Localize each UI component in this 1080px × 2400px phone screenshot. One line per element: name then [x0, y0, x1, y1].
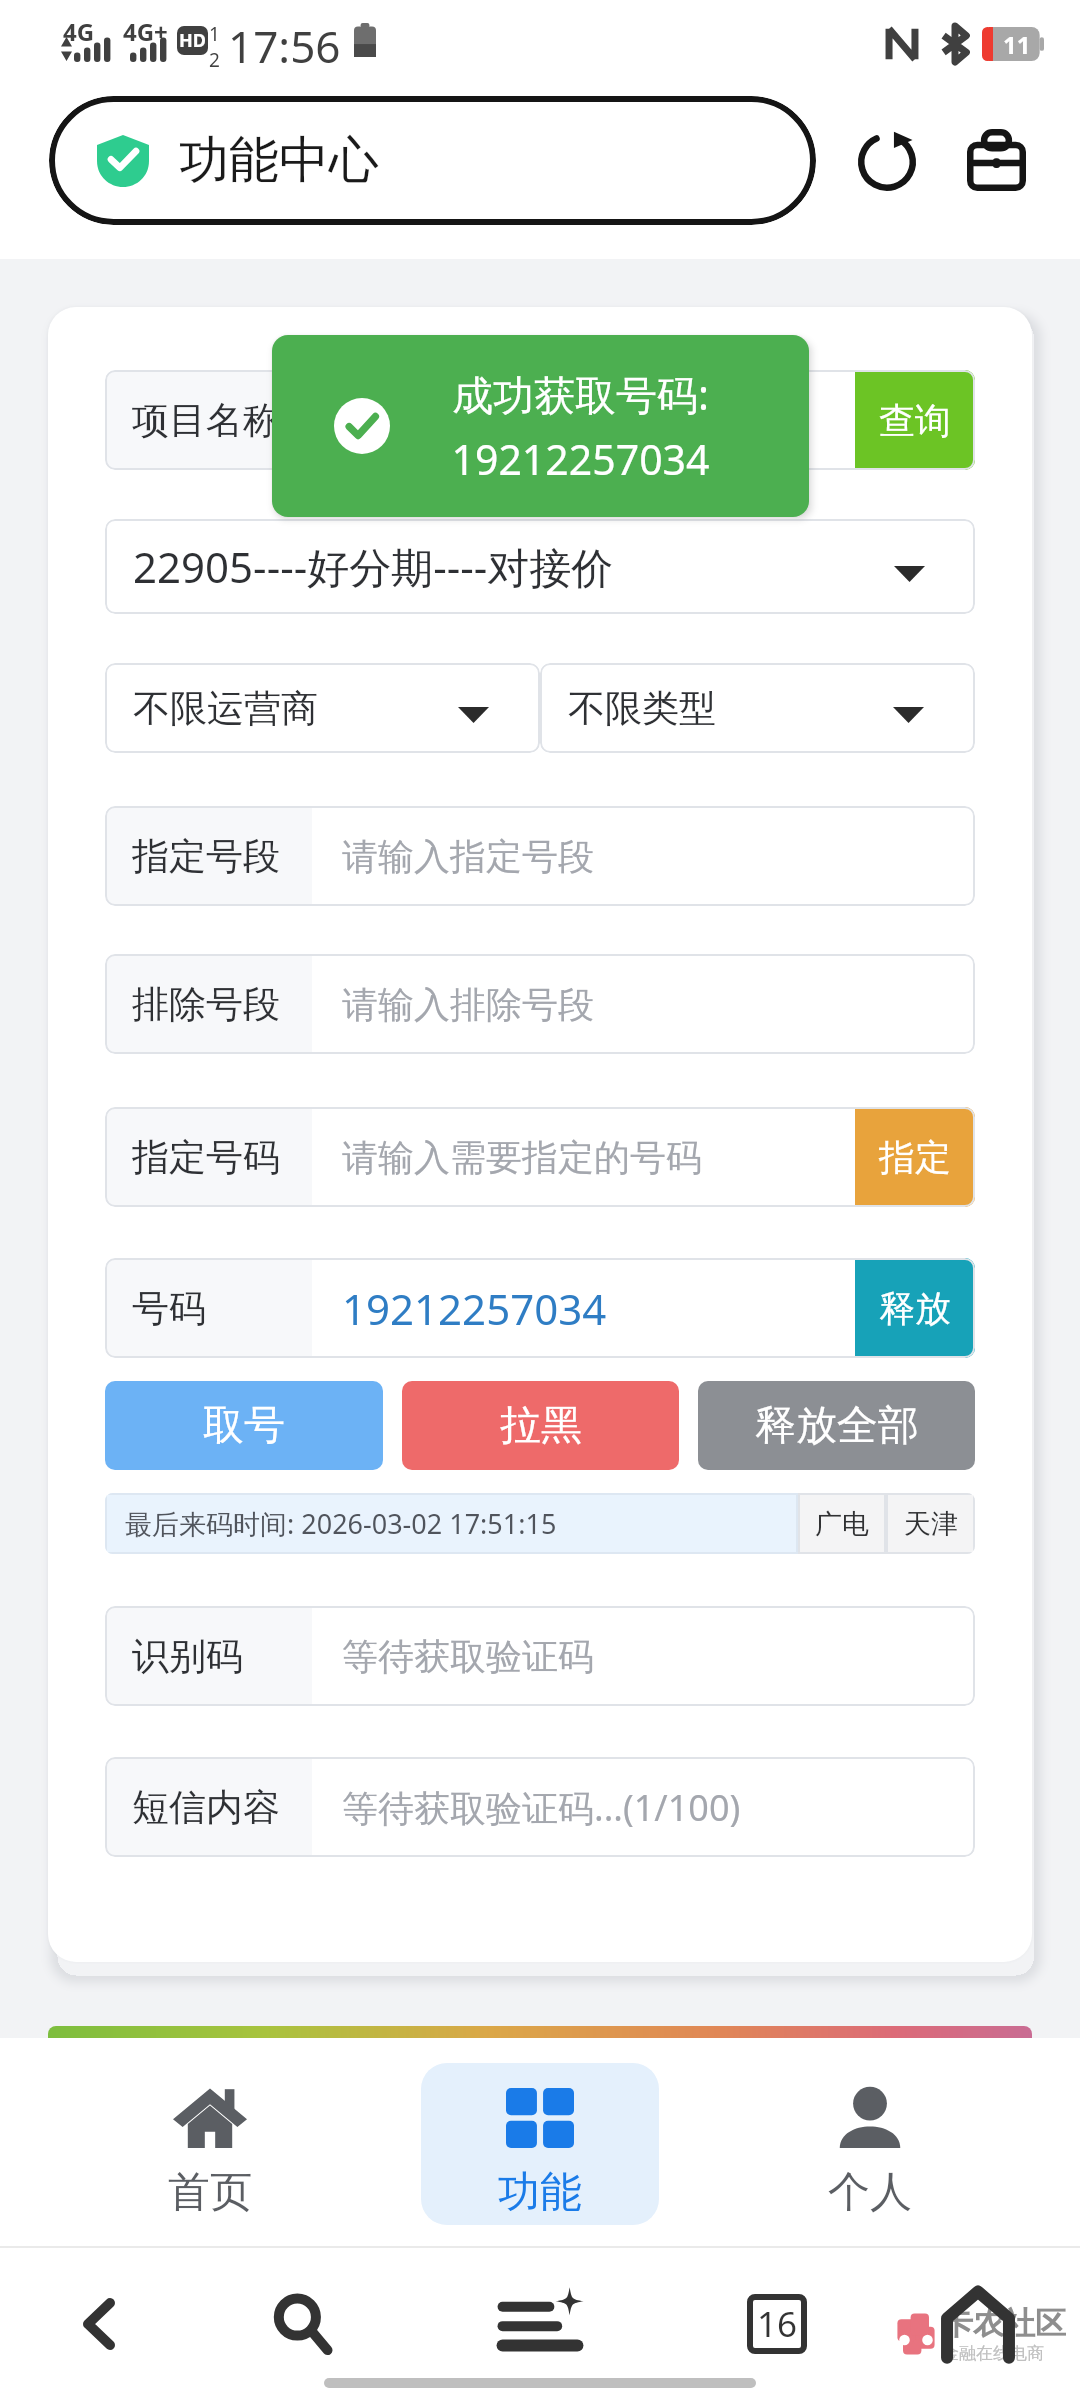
button[interactable]: 不限类型 — [540, 663, 975, 753]
staticText: 拉黑 — [500, 1400, 582, 1452]
staticText: 22905----好分期----对接价 — [133, 538, 614, 595]
staticText: 等待获取验证码 — [342, 1634, 594, 1679]
staticText: 请输入排除号段 — [342, 982, 594, 1027]
staticText: 卡农社区 — [942, 2304, 1066, 2343]
staticText: 11 — [1003, 28, 1031, 61]
staticText: 2 — [209, 47, 220, 73]
button[interactable]: 取号 — [105, 1381, 383, 1470]
button[interactable]: 个人 — [751, 2063, 989, 2225]
staticText: 指定号段 — [132, 833, 280, 880]
staticText: 最后来码时间: 2026-03-02 17:51:15 — [125, 1505, 557, 1542]
button[interactable]: 拉黑 — [402, 1381, 679, 1470]
staticText: 功能 — [498, 2166, 582, 2219]
staticText: 不限运营商 — [133, 685, 318, 732]
button[interactable]: Back — [45, 2269, 155, 2379]
staticText: 排除号段 — [132, 981, 280, 1028]
staticText: 首页 — [168, 2166, 252, 2219]
staticText: 等待获取验证码...(1/100) — [342, 1783, 741, 1832]
button[interactable]: 首页 — [91, 2063, 329, 2225]
staticText: 释放 — [879, 1286, 951, 1331]
staticText: 查询 — [879, 398, 951, 443]
button[interactable]: 指定 — [855, 1107, 975, 1207]
staticText: 天津 — [904, 1507, 958, 1541]
staticText: 指定 — [879, 1135, 951, 1180]
button[interactable]: 释放全部 — [698, 1381, 975, 1470]
staticText: 金融在线电商 — [942, 2343, 1044, 2364]
staticText: 识别码 — [132, 1633, 243, 1680]
staticText: 19212257034 — [342, 1280, 607, 1337]
staticText: 短信内容 — [132, 1784, 280, 1831]
staticText: 4G — [63, 15, 95, 48]
staticText: 功能中心 — [179, 129, 379, 192]
button[interactable]: Search — [247, 2269, 357, 2379]
button[interactable]: Toolbox — [941, 105, 1051, 215]
staticText: 不限类型 — [568, 685, 716, 732]
staticText: 请输入指定号段 — [342, 834, 594, 879]
button[interactable]: Home — [923, 2269, 1033, 2379]
staticText: 4G+ — [123, 15, 168, 48]
staticText: 释放全部 — [755, 1400, 919, 1452]
button[interactable]: 功能 — [421, 2063, 659, 2225]
button[interactable]: Tabs — [722, 2269, 832, 2379]
button[interactable]: 22905----好分期----对接价 — [105, 519, 975, 614]
button[interactable]: 不限运营商 — [105, 663, 540, 753]
button[interactable]: Refresh — [832, 105, 942, 215]
staticText: 项目名称 — [132, 397, 280, 444]
staticText: 17:56 — [228, 16, 341, 76]
button[interactable]: 释放 — [855, 1258, 975, 1358]
staticText: 取号 — [203, 1400, 285, 1452]
staticText: 个人 — [828, 2166, 912, 2219]
staticText: HD — [179, 28, 206, 53]
staticText: 指定号码 — [132, 1134, 280, 1181]
button[interactable]: 功能中心 — [49, 96, 816, 225]
button[interactable]: 查询 — [855, 370, 975, 470]
staticText: 成功获取号码: 19212257034 — [390, 366, 771, 487]
staticText: 请输入需要指定的号码 — [342, 1135, 702, 1180]
button[interactable]: Menu — [485, 2269, 595, 2379]
staticText: 16 — [757, 2300, 798, 2348]
staticText: 1 — [209, 21, 220, 47]
staticText: 号码 — [132, 1285, 206, 1332]
staticText: 广电 — [815, 1507, 869, 1541]
